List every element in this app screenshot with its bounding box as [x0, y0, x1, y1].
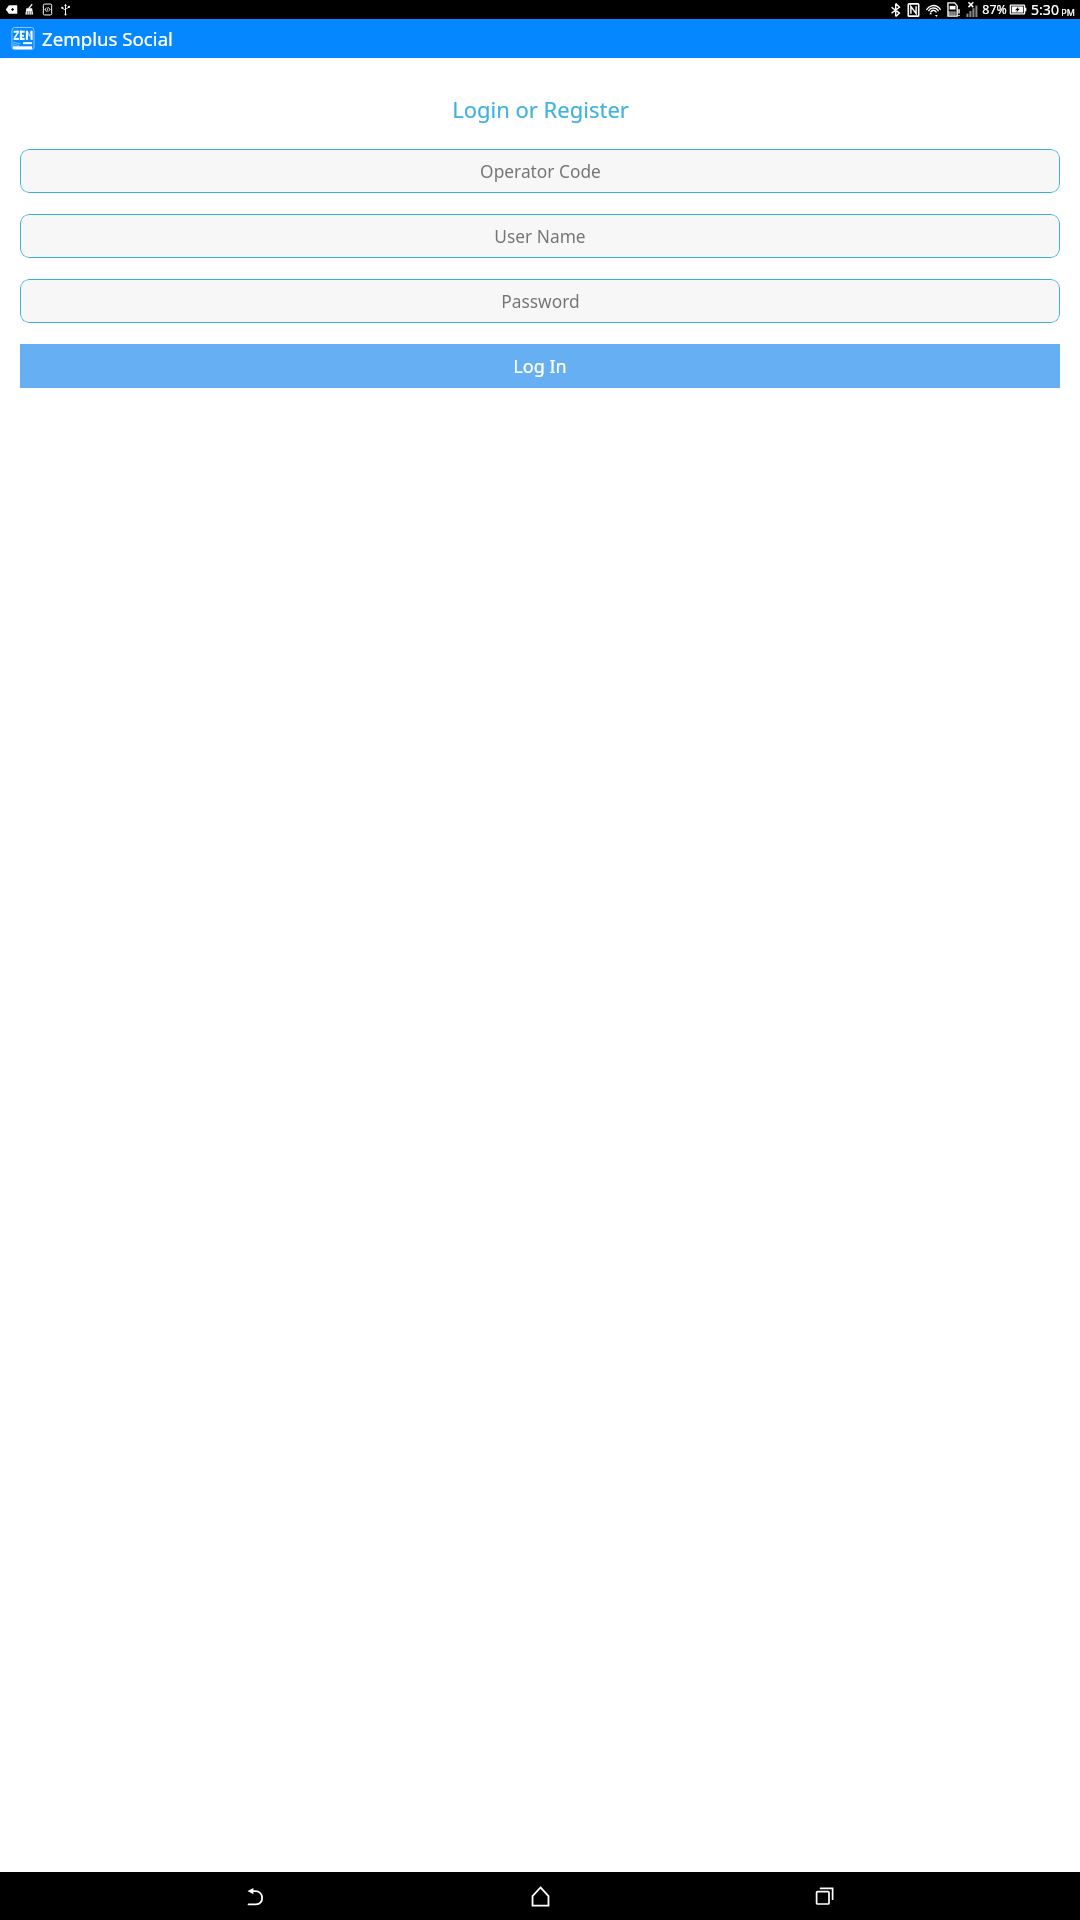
- staticText: User Name: [494, 224, 586, 248]
- staticText: 5:30: [1031, 0, 1059, 19]
- staticText: Password: [501, 289, 580, 313]
- staticText: Log In: [513, 354, 567, 379]
- button[interactable]: Home: [510, 1872, 570, 1920]
- button[interactable]: Operator Code: [20, 149, 1060, 193]
- staticText: 87%: [982, 1, 1007, 18]
- button[interactable]: User Name: [20, 214, 1060, 258]
- button[interactable]: Back: [225, 1872, 285, 1920]
- button[interactable]: Recent apps: [795, 1872, 855, 1920]
- button[interactable]: Password: [20, 279, 1060, 323]
- staticText: Operator Code: [480, 159, 601, 183]
- staticText: Login or Register: [452, 94, 629, 124]
- staticText: Zemplus Social: [42, 26, 173, 51]
- button[interactable]: Log In: [20, 344, 1060, 388]
- staticText: PM: [1061, 6, 1075, 18]
- other: Zemplus Social logo: [11, 27, 35, 50]
